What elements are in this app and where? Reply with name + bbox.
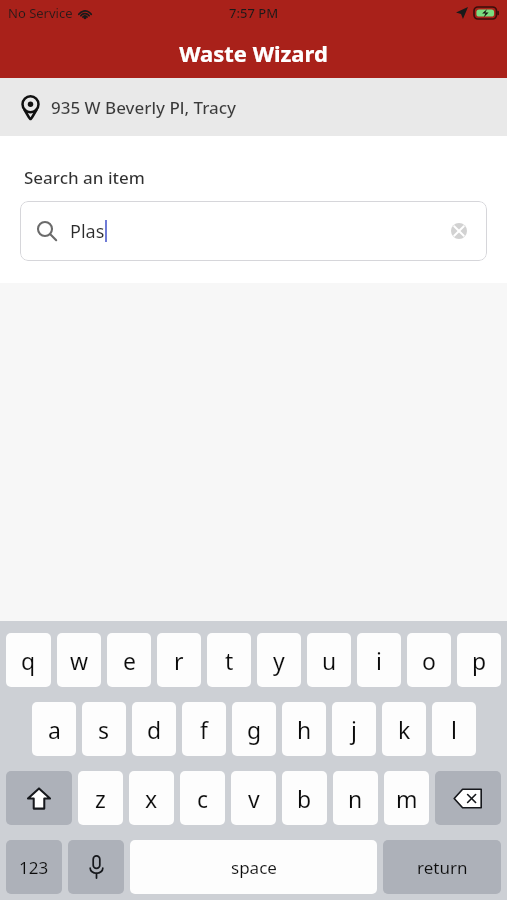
button[interactable]: j	[332, 702, 376, 756]
staticText: l	[451, 714, 457, 745]
staticText: o	[422, 645, 436, 676]
staticText: 7:57 PM	[229, 4, 279, 22]
staticText: d	[147, 714, 162, 745]
staticText: k	[398, 714, 411, 745]
button[interactable]: g	[232, 702, 276, 756]
button[interactable]: c	[180, 771, 225, 825]
button[interactable]: e	[107, 633, 151, 687]
button[interactable]: Backspace	[435, 771, 501, 825]
staticText: i	[376, 645, 382, 676]
button[interactable]: v	[231, 771, 276, 825]
staticText: return	[417, 856, 468, 879]
button[interactable]: t	[207, 633, 251, 687]
button[interactable]: x	[129, 771, 174, 825]
button[interactable]: l	[432, 702, 476, 756]
staticText: u	[322, 645, 337, 676]
button[interactable]: n	[333, 771, 378, 825]
staticText: q	[21, 645, 36, 676]
staticText: h	[297, 714, 312, 745]
staticText: w	[70, 645, 89, 676]
button[interactable]: w	[57, 633, 101, 687]
staticText: n	[348, 783, 363, 814]
button[interactable]: space	[130, 840, 377, 894]
button[interactable]: k	[382, 702, 426, 756]
button[interactable]: 935 W Beverly Pl, Tracy	[0, 78, 507, 136]
button[interactable]: f	[182, 702, 226, 756]
button[interactable]: 123	[6, 840, 62, 894]
button[interactable]: y	[257, 633, 301, 687]
staticText: 123	[19, 856, 49, 879]
button[interactable]: r	[157, 633, 201, 687]
button[interactable]: Voice input	[68, 840, 124, 894]
staticText: y	[273, 645, 285, 676]
button[interactable]: p	[457, 633, 501, 687]
staticText: r	[174, 645, 184, 676]
button[interactable]: d	[132, 702, 176, 756]
button[interactable]: s	[82, 702, 126, 756]
button[interactable]: u	[307, 633, 351, 687]
staticText: space	[231, 856, 277, 879]
button[interactable]: b	[282, 771, 327, 825]
staticText: z	[95, 783, 106, 814]
staticText: j	[351, 714, 357, 745]
button[interactable]: m	[384, 771, 429, 825]
button[interactable]: a	[32, 702, 76, 756]
staticText: p	[472, 645, 487, 676]
button[interactable]: o	[407, 633, 451, 687]
staticText: f	[200, 714, 208, 745]
staticText: t	[225, 645, 234, 676]
staticText: c	[197, 783, 209, 814]
staticText: e	[123, 645, 136, 676]
button[interactable]: Clear search text	[448, 220, 470, 242]
button[interactable]: z	[78, 771, 123, 825]
button[interactable]: Shift	[6, 771, 72, 825]
staticText: m	[396, 783, 418, 814]
staticText: Waste Wizard	[179, 38, 328, 68]
staticText: s	[98, 714, 110, 745]
staticText: 935 W Beverly Pl, Tracy	[51, 96, 237, 119]
staticText: No Service	[8, 4, 73, 22]
staticText: a	[48, 714, 61, 745]
staticText: v	[248, 783, 260, 814]
button[interactable]: return	[383, 840, 501, 894]
button[interactable]: h	[282, 702, 326, 756]
staticText: Plas	[70, 219, 105, 244]
staticText: b	[297, 783, 312, 814]
button[interactable]: q	[6, 633, 51, 687]
staticText: g	[247, 714, 262, 745]
staticText: Search an item	[24, 166, 145, 189]
button[interactable]: i	[357, 633, 401, 687]
staticText: x	[145, 783, 158, 814]
button[interactable]: Plas	[20, 201, 487, 261]
